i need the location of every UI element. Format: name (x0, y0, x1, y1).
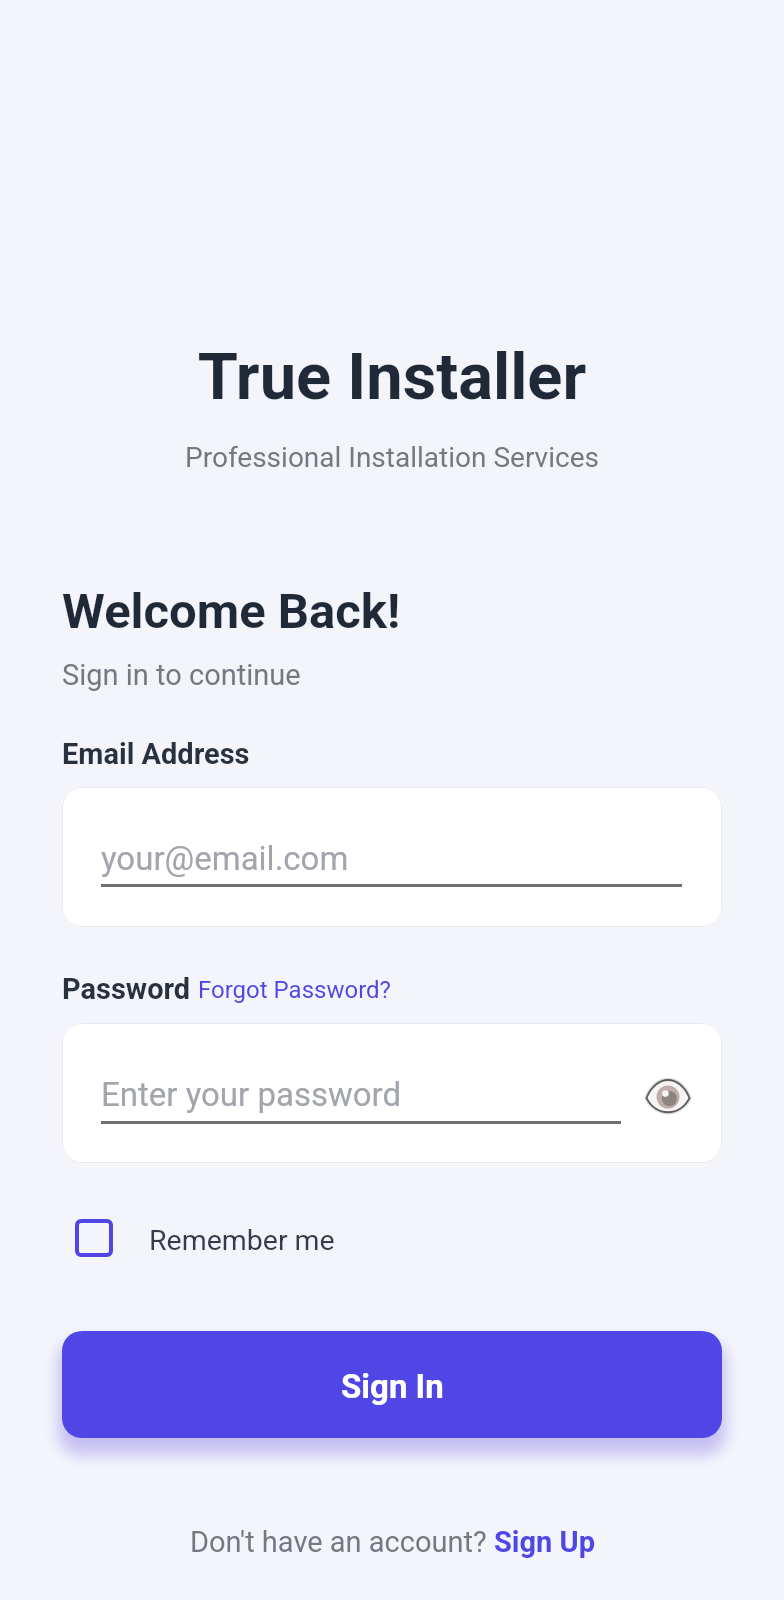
button[interactable]: Forgot Password? (198, 976, 391, 1004)
staticText: Don't have an account? (190, 1525, 494, 1559)
staticText: Enter your password (101, 1075, 402, 1114)
staticText: Remember me (149, 1224, 335, 1257)
staticText: your@email.com (101, 839, 349, 878)
staticText: Welcome Back! (62, 583, 401, 640)
button[interactable]: Sign Up (494, 1525, 595, 1559)
staticText: Sign In (341, 1367, 444, 1406)
button[interactable]: Show password (631, 1060, 705, 1134)
staticText: True Installer (0, 339, 784, 415)
button[interactable]: Remember me (63, 1209, 335, 1267)
staticText: Forgot Password? (198, 976, 391, 1004)
button[interactable]: Sign In (62, 1331, 722, 1438)
staticText: Password (62, 972, 191, 1006)
staticText: Email Address (62, 737, 250, 771)
button[interactable]: your@email.com (62, 787, 722, 927)
button[interactable]: Enter your password (62, 1023, 722, 1163)
staticText: Professional Installation Services (0, 441, 784, 474)
staticText: Sign in to continue (62, 658, 301, 692)
staticText: Sign Up (494, 1525, 595, 1559)
